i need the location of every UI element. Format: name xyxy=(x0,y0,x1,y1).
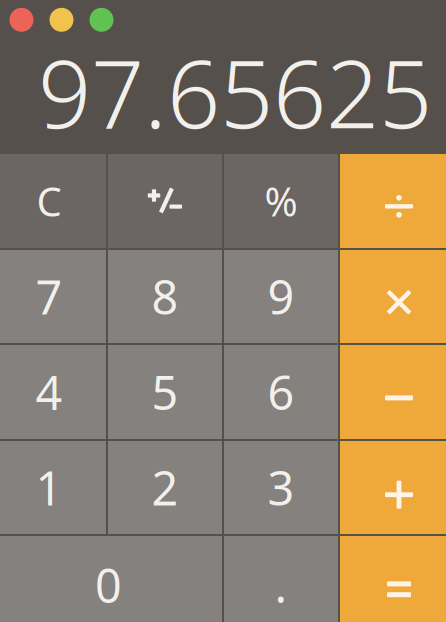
staticText: 6 xyxy=(267,361,294,423)
button[interactable]: 3 xyxy=(224,441,338,534)
staticText: 3 xyxy=(267,456,294,518)
button[interactable]: . xyxy=(224,536,338,622)
button[interactable] xyxy=(340,345,446,439)
button[interactable]: Close window xyxy=(9,8,33,32)
button[interactable]: Minimize window xyxy=(49,8,73,32)
staticText: 8 xyxy=(151,265,178,327)
staticText: 0 xyxy=(95,554,122,616)
button[interactable]: 4 xyxy=(0,345,106,439)
button[interactable]: 7 xyxy=(0,250,106,343)
staticText: 4 xyxy=(35,361,62,423)
button[interactable]: 6 xyxy=(224,345,338,439)
button[interactable]: 8 xyxy=(108,250,222,343)
staticText: C xyxy=(36,174,61,227)
staticText: 7 xyxy=(35,265,62,327)
staticText: 2 xyxy=(151,456,178,518)
staticText: 97.65625 xyxy=(38,30,432,154)
button[interactable]: 1 xyxy=(0,441,106,534)
staticText: 1 xyxy=(35,456,62,518)
staticText: 5 xyxy=(151,361,178,423)
button[interactable] xyxy=(340,154,446,248)
button[interactable]: 0 xyxy=(0,536,222,622)
staticText: % xyxy=(264,174,297,227)
staticText: 9 xyxy=(267,265,294,327)
button[interactable] xyxy=(108,154,222,248)
button[interactable]: 2 xyxy=(108,441,222,534)
button[interactable]: C xyxy=(0,154,106,248)
button[interactable]: % xyxy=(224,154,338,248)
button[interactable]: Zoom window xyxy=(89,8,113,32)
button[interactable] xyxy=(340,441,446,534)
staticText: . xyxy=(274,554,287,616)
button[interactable] xyxy=(340,536,446,622)
button[interactable] xyxy=(340,250,446,343)
button[interactable]: 5 xyxy=(108,345,222,439)
button[interactable]: 9 xyxy=(224,250,338,343)
